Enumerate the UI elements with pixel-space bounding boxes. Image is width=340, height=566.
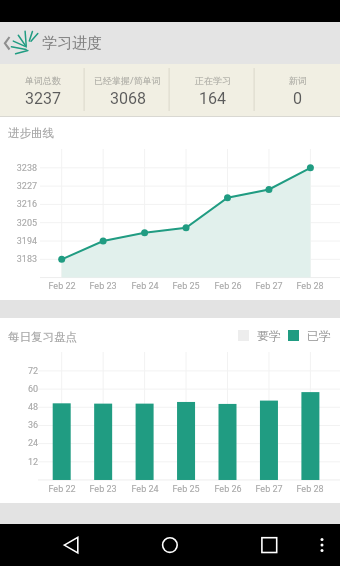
staticText: Feb 28 — [296, 484, 324, 495]
button[interactable]: 正在学习 — [170, 64, 255, 116]
button[interactable]: 新词 — [255, 64, 340, 116]
button[interactable]: Home — [155, 524, 185, 566]
button[interactable]: 已学 — [288, 328, 331, 343]
staticText: 3237 — [25, 89, 61, 108]
staticText: 24 — [27, 438, 38, 449]
staticText: Feb 28 — [296, 281, 324, 292]
button[interactable]: 要学 — [238, 328, 281, 343]
staticText: 72 — [27, 366, 38, 377]
staticText: Feb 26 — [214, 281, 242, 292]
staticText: Feb 24 — [131, 281, 159, 292]
staticText: Feb 23 — [89, 484, 117, 495]
staticText: 每日复习盘点 — [8, 330, 77, 344]
staticText: 3216 — [16, 199, 37, 210]
staticText: 3238 — [16, 163, 37, 174]
staticText: 48 — [27, 402, 38, 413]
staticText: 3227 — [16, 181, 37, 192]
staticText: 单词总数 — [25, 75, 61, 86]
staticText: 要学 — [257, 328, 281, 343]
staticText: 进步曲线 — [8, 126, 54, 140]
button[interactable]: Back — [56, 524, 86, 566]
staticText: 36 — [27, 420, 38, 431]
staticText: Feb 22 — [48, 281, 76, 292]
staticText: 164 — [199, 89, 226, 108]
staticText: Feb 25 — [172, 484, 200, 495]
staticText: Feb 25 — [172, 281, 200, 292]
button[interactable]: 已经掌握/简单词 — [85, 64, 170, 116]
staticText: Feb 24 — [131, 484, 159, 495]
staticText: Feb 26 — [214, 484, 242, 495]
staticText: 3183 — [16, 254, 37, 265]
staticText: 3194 — [16, 236, 37, 247]
button[interactable]: More options — [310, 524, 334, 566]
button[interactable]: Recent apps — [254, 524, 284, 566]
staticText: 已经掌握/简单词 — [94, 75, 161, 86]
staticText: 0 — [293, 89, 302, 108]
button[interactable]: Back — [0, 22, 16, 64]
staticText: Feb 27 — [255, 281, 283, 292]
staticText: 60 — [27, 384, 38, 395]
staticText: 学习进度 — [42, 34, 102, 53]
staticText: 新词 — [289, 75, 307, 86]
staticText: Feb 23 — [89, 281, 117, 292]
staticText: Feb 27 — [255, 484, 283, 495]
button[interactable]: 单词总数 — [0, 64, 85, 116]
staticText: 正在学习 — [195, 75, 231, 86]
staticText: 12 — [27, 457, 38, 468]
staticText: 3205 — [16, 218, 37, 229]
staticText: 已学 — [307, 328, 331, 343]
staticText: Feb 22 — [48, 484, 76, 495]
staticText: 3068 — [110, 89, 146, 108]
